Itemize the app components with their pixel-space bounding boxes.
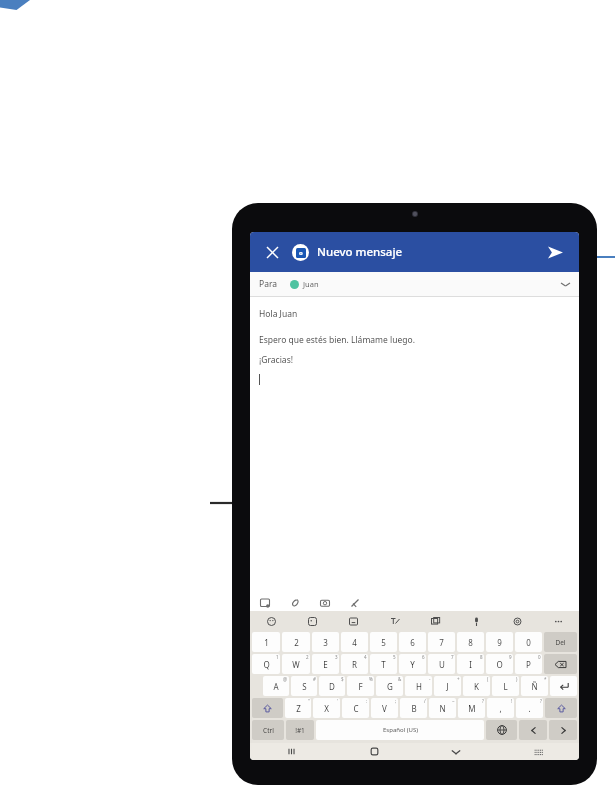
button[interactable]: L <box>492 676 519 696</box>
staticText: ~ <box>452 698 455 704</box>
button[interactable]: P <box>515 654 542 674</box>
staticText: Español (US) <box>383 726 418 734</box>
button[interactable]: 3 <box>312 632 339 652</box>
staticText: Ñ <box>531 681 538 692</box>
staticText: : <box>366 698 368 704</box>
staticText: Y <box>410 659 415 670</box>
button[interactable]: Attach file <box>288 596 302 610</box>
button[interactable]: 4 <box>341 632 368 652</box>
button[interactable]: Shift right <box>545 698 577 718</box>
button[interactable]: Send <box>542 239 568 265</box>
button[interactable]: Español (US) <box>316 720 484 740</box>
staticText: D <box>329 681 335 692</box>
button[interactable]: Clipboard <box>415 611 456 631</box>
button[interactable]: Para <box>250 272 579 296</box>
button[interactable]: 5 <box>370 632 397 652</box>
staticText: 2 <box>294 637 299 648</box>
button[interactable]: F <box>347 676 374 696</box>
button[interactable]: Voice input <box>456 611 497 631</box>
staticText: 6 <box>410 637 415 648</box>
button[interactable]: , <box>487 698 514 718</box>
button[interactable]: O <box>486 654 513 674</box>
staticText: 9 <box>497 637 502 648</box>
button[interactable]: Q <box>252 654 280 674</box>
button[interactable]: Keyboard layout <box>497 743 579 760</box>
staticText: F <box>358 681 363 692</box>
staticText: M <box>468 703 476 714</box>
button[interactable]: 2 <box>282 632 310 652</box>
button[interactable]: Stickers <box>292 611 333 631</box>
button[interactable]: Z <box>285 698 311 718</box>
staticText: 4 <box>352 637 357 648</box>
staticText: I <box>469 659 472 670</box>
button[interactable]: 0 <box>515 632 542 652</box>
staticText: Para <box>259 278 278 290</box>
button[interactable]: Handwriting <box>374 611 415 631</box>
button[interactable]: R <box>341 654 368 674</box>
button[interactable]: Settings <box>497 611 538 631</box>
button[interactable]: A <box>263 676 289 696</box>
button[interactable]: . <box>516 698 543 718</box>
button[interactable]: 8 <box>457 632 484 652</box>
button[interactable]: Home <box>333 743 415 760</box>
button[interactable]: G <box>376 676 403 696</box>
staticText: Ctrl <box>263 726 274 735</box>
staticText: . <box>528 703 531 714</box>
staticText: Q <box>263 659 270 670</box>
button[interactable]: Move right <box>549 720 577 740</box>
staticText: - <box>429 676 431 682</box>
staticText: % <box>369 676 373 682</box>
staticText: ? <box>540 698 542 704</box>
staticText: Z <box>296 703 301 714</box>
staticText: 2 <box>306 654 309 660</box>
button[interactable]: T <box>370 654 397 674</box>
button[interactable]: Change language <box>486 720 517 740</box>
button[interactable]: S <box>291 676 317 696</box>
button[interactable]: M <box>458 698 485 718</box>
button[interactable]: Backspace <box>544 654 577 674</box>
staticText: O <box>496 659 503 670</box>
button[interactable]: GIF <box>333 611 374 631</box>
button[interactable]: Y <box>399 654 426 674</box>
button[interactable]: U <box>428 654 455 674</box>
button[interactable]: Move left <box>519 720 547 740</box>
staticText: o <box>299 249 303 257</box>
button[interactable]: N <box>429 698 456 718</box>
button[interactable]: Insert image <box>258 596 272 610</box>
staticText: ; <box>395 698 397 704</box>
button[interactable]: B <box>400 698 427 718</box>
button[interactable]: More options <box>538 611 579 631</box>
button[interactable]: I <box>457 654 484 674</box>
button[interactable]: Recents <box>250 743 333 760</box>
staticText: B <box>411 703 417 714</box>
button[interactable]: Ñ <box>521 676 548 696</box>
button[interactable]: W <box>282 654 310 674</box>
button[interactable]: Ctrl <box>252 720 284 740</box>
button[interactable]: 1 <box>252 632 280 652</box>
button[interactable]: Close <box>261 241 283 263</box>
staticText: + <box>457 676 460 682</box>
button[interactable]: J <box>434 676 461 696</box>
button[interactable]: Enter <box>550 676 577 696</box>
button[interactable]: !#1 <box>286 720 314 740</box>
staticText: , <box>499 703 502 714</box>
button[interactable]: D <box>319 676 345 696</box>
button[interactable]: C <box>342 698 369 718</box>
button[interactable]: E <box>312 654 339 674</box>
staticText: W <box>292 659 300 670</box>
button[interactable]: 9 <box>486 632 513 652</box>
button[interactable]: H <box>405 676 432 696</box>
button[interactable]: V <box>371 698 398 718</box>
button[interactable]: 7 <box>428 632 455 652</box>
staticText: 4 <box>364 654 367 660</box>
button[interactable]: 6 <box>399 632 426 652</box>
button[interactable]: X <box>313 698 340 718</box>
button[interactable]: Camera <box>318 596 332 610</box>
button[interactable]: Del <box>544 632 577 652</box>
button[interactable]: K <box>463 676 490 696</box>
staticText: V <box>382 703 387 714</box>
button[interactable]: Draw <box>348 596 362 610</box>
button[interactable]: Emoji <box>250 611 292 631</box>
button[interactable]: Shift <box>252 698 283 718</box>
button[interactable]: Hide keyboard <box>415 743 497 760</box>
